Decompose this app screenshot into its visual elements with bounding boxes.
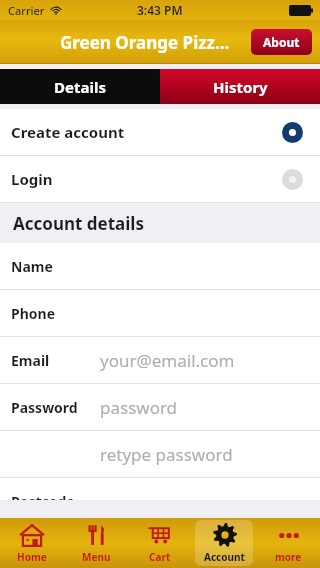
- button[interactable]: Cart: [128, 518, 192, 568]
- staticText: Name: [11, 257, 53, 276]
- staticText: About: [263, 34, 300, 50]
- staticText: Details: [54, 77, 106, 97]
- button[interactable]: Account: [192, 518, 256, 568]
- staticText: Account details: [13, 212, 144, 235]
- staticText: Password: [11, 398, 78, 417]
- staticText: password: [100, 396, 178, 419]
- button[interactable]: About: [251, 29, 312, 55]
- staticText: Home: [17, 550, 47, 564]
- staticText: Create account: [11, 122, 125, 142]
- staticText: Email: [11, 351, 50, 370]
- button[interactable]: Details: [0, 69, 160, 104]
- staticText: Phone: [11, 304, 56, 323]
- staticText: History: [213, 77, 268, 97]
- button[interactable]: Phone: [0, 290, 320, 336]
- staticText: more: [275, 550, 302, 564]
- staticText: your@email.com: [100, 349, 235, 372]
- button[interactable]: History: [160, 69, 320, 104]
- button[interactable]: Password: [0, 384, 320, 430]
- button[interactable]: more: [256, 518, 320, 568]
- button[interactable]: Create account: [0, 109, 320, 155]
- staticText: Account: [204, 550, 245, 564]
- button[interactable]: Postcode: [0, 478, 320, 500]
- button[interactable]: Name: [0, 243, 320, 289]
- staticText: Postcode: [11, 492, 75, 500]
- staticText: Cart: [149, 550, 171, 564]
- staticText: retype password: [100, 443, 233, 466]
- staticText: 3:43 PM: [137, 2, 183, 18]
- staticText: Green Orange Pizz...: [60, 31, 230, 54]
- button[interactable]: retype password: [0, 431, 320, 477]
- button[interactable]: Menu: [64, 518, 128, 568]
- staticText: Login: [11, 169, 53, 189]
- button[interactable]: Email: [0, 337, 320, 383]
- button[interactable]: Home: [0, 518, 64, 568]
- button[interactable]: Login: [0, 156, 320, 202]
- staticText: Menu: [82, 550, 111, 564]
- staticText: Carrier: [8, 3, 45, 18]
